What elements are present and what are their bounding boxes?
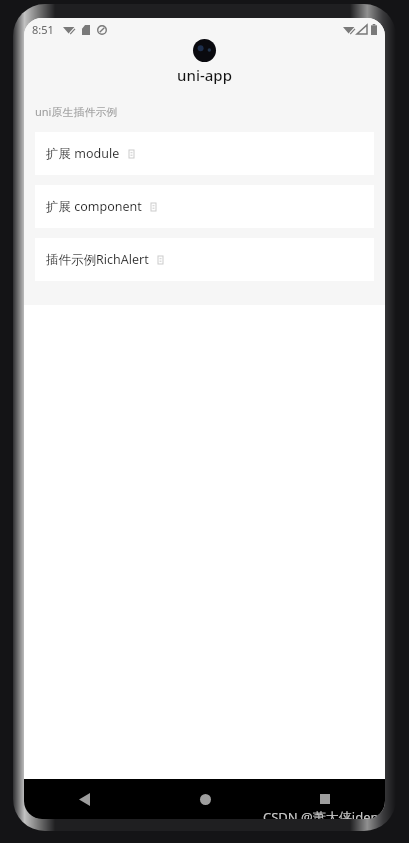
staticText: 扩展 component: [46, 198, 142, 215]
staticText: 8:51: [32, 22, 54, 37]
button[interactable]: Back: [24, 779, 145, 819]
button[interactable]: Home: [145, 779, 265, 819]
staticText: 扩展 module: [46, 145, 120, 162]
button[interactable]: 插件示例RichAlert: [35, 238, 374, 281]
staticText: 插件示例RichAlert: [46, 251, 149, 268]
staticText: CSDN @萧大侠jdeps: [263, 808, 385, 819]
button[interactable]: 扩展 module: [35, 132, 374, 175]
staticText: uni原生插件示例: [35, 104, 118, 119]
button[interactable]: Recents: [265, 779, 385, 819]
button[interactable]: 扩展 component: [35, 185, 374, 228]
staticText: uni-app: [177, 65, 232, 85]
